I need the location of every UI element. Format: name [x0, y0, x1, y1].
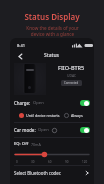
staticText: Select Bluetooth codec: [14, 170, 61, 176]
staticText: Charge:: [14, 100, 31, 106]
staticText: Until device restarts: [26, 113, 60, 118]
staticText: FIIO-BTR5: [58, 64, 85, 71]
staticText: 0: [16, 160, 18, 164]
staticText: Car mode:: [14, 127, 36, 133]
staticText: 60: [48, 160, 52, 164]
staticText: 90: [65, 160, 69, 164]
staticText: 120: [82, 160, 88, 164]
button[interactable]: Toggle: [80, 100, 90, 106]
button[interactable]: Car mode:: [14, 123, 90, 137]
staticText: Status: [44, 52, 60, 59]
button[interactable]: Back: [14, 50, 26, 62]
staticText: 8:41: [17, 43, 25, 48]
staticText: 70mA: [31, 142, 41, 147]
button[interactable]: Toggle: [80, 127, 90, 133]
staticText: UDAC: [67, 73, 77, 78]
button[interactable]: Select Bluetooth codec: [14, 166, 90, 179]
button[interactable]: Charge:: [14, 97, 90, 109]
staticText: Know the details of your device with a g…: [26, 25, 79, 38]
staticText: Connected: [64, 81, 79, 85]
staticText: Open: [33, 100, 44, 106]
button[interactable]: Always: [64, 113, 69, 118]
staticText: EQ: Off: [14, 141, 29, 147]
staticText: 30: [31, 160, 35, 164]
staticText: Open: [38, 127, 49, 133]
staticText: Status Display: [24, 11, 80, 22]
button[interactable]: Until device restarts: [19, 113, 24, 118]
staticText: Always: [71, 113, 83, 118]
